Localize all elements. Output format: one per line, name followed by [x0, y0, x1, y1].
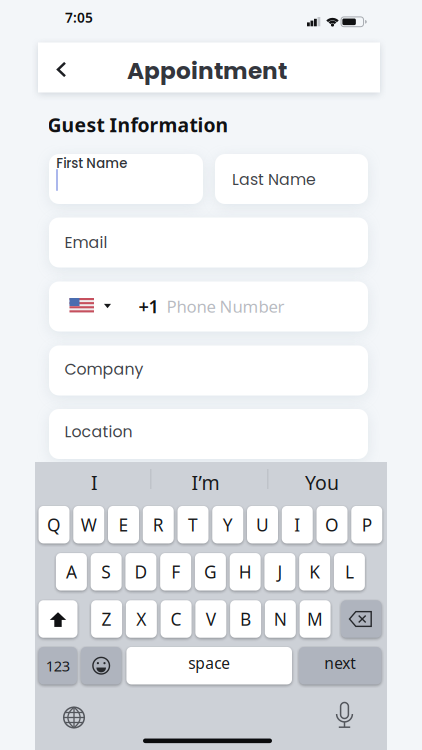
- staticText: W: [81, 513, 97, 536]
- button[interactable]: D: [125, 553, 156, 590]
- button[interactable]: S: [91, 553, 122, 590]
- button[interactable]: Location: [49, 409, 368, 459]
- staticText: next: [324, 653, 356, 674]
- button[interactable]: O: [316, 506, 347, 543]
- staticText: I: [91, 469, 98, 496]
- button[interactable]: next: [299, 647, 381, 684]
- staticText: U: [256, 513, 269, 536]
- button[interactable]: I’m: [155, 467, 255, 497]
- button[interactable]: E: [108, 506, 139, 543]
- staticText: I’m: [191, 469, 219, 496]
- staticText: V: [206, 607, 216, 631]
- button[interactable]: Dictate: [329, 699, 359, 729]
- staticText: I: [294, 513, 300, 536]
- button[interactable]: W: [73, 506, 104, 543]
- button[interactable]: L: [334, 553, 365, 590]
- button[interactable]: V: [195, 600, 226, 638]
- staticText: S: [101, 560, 111, 584]
- button[interactable]: U: [247, 506, 278, 543]
- staticText: M: [307, 607, 323, 631]
- button[interactable]: Emoji: [82, 647, 121, 684]
- button[interactable]: G: [195, 553, 226, 590]
- button[interactable]: A: [56, 553, 87, 590]
- staticText: L: [345, 560, 354, 584]
- staticText: R: [153, 513, 164, 536]
- button[interactable]: First Name: [49, 154, 203, 204]
- staticText: Q: [47, 513, 61, 536]
- button[interactable]: Back: [45, 49, 75, 89]
- button[interactable]: Last Name: [215, 154, 368, 204]
- button[interactable]: Shift: [38, 600, 77, 638]
- button[interactable]: T: [177, 506, 208, 543]
- staticText: A: [66, 560, 77, 584]
- staticText: O: [325, 513, 339, 536]
- staticText: E: [118, 513, 128, 536]
- staticText: Company: [64, 358, 143, 380]
- button[interactable]: P: [351, 506, 382, 543]
- staticText: K: [309, 560, 320, 584]
- button[interactable]: Phone Number: [49, 281, 368, 331]
- staticText: N: [274, 607, 287, 631]
- button[interactable]: C: [161, 600, 192, 638]
- staticText: Guest Information: [47, 112, 228, 138]
- staticText: Last Name: [232, 168, 316, 190]
- staticText: space: [188, 653, 230, 674]
- button[interactable]: F: [160, 553, 191, 590]
- button[interactable]: Company: [49, 345, 368, 395]
- staticText: P: [362, 513, 372, 536]
- staticText: 123: [46, 656, 70, 676]
- button[interactable]: X: [126, 600, 157, 638]
- button[interactable]: You: [272, 467, 372, 497]
- staticText: Y: [223, 513, 233, 536]
- staticText: Phone Number: [166, 295, 284, 318]
- button[interactable]: Switch keyboard: [59, 702, 89, 732]
- button[interactable]: M: [300, 600, 331, 638]
- button[interactable]: Q: [38, 506, 69, 543]
- button[interactable]: H: [230, 553, 261, 590]
- button[interactable]: I: [282, 506, 313, 543]
- staticText: +1: [138, 294, 158, 319]
- button[interactable]: R: [143, 506, 174, 543]
- staticText: H: [239, 560, 252, 584]
- button[interactable]: space: [126, 647, 292, 684]
- button[interactable]: 123: [38, 647, 77, 684]
- button[interactable]: K: [299, 553, 330, 590]
- staticText: 7:05: [65, 8, 93, 27]
- staticText: You: [305, 469, 339, 496]
- button[interactable]: Y: [212, 506, 243, 543]
- staticText: G: [204, 560, 217, 584]
- staticText: J: [277, 560, 282, 584]
- button[interactable]: Z: [91, 600, 122, 638]
- staticText: Email: [64, 231, 107, 253]
- staticText: F: [171, 560, 180, 584]
- button[interactable]: I: [44, 467, 144, 497]
- staticText: X: [136, 607, 146, 631]
- staticText: T: [188, 513, 198, 536]
- button[interactable]: J: [264, 553, 295, 590]
- staticText: Location: [64, 421, 132, 443]
- staticText: Appointment: [127, 55, 287, 87]
- staticText: First Name: [56, 154, 127, 173]
- button[interactable]: B: [230, 600, 261, 638]
- button[interactable]: Delete: [341, 600, 381, 638]
- staticText: D: [134, 560, 147, 584]
- staticText: Z: [102, 607, 112, 631]
- staticText: C: [171, 607, 182, 631]
- button[interactable]: N: [265, 600, 296, 638]
- staticText: B: [240, 607, 251, 631]
- button[interactable]: Email: [49, 217, 368, 267]
